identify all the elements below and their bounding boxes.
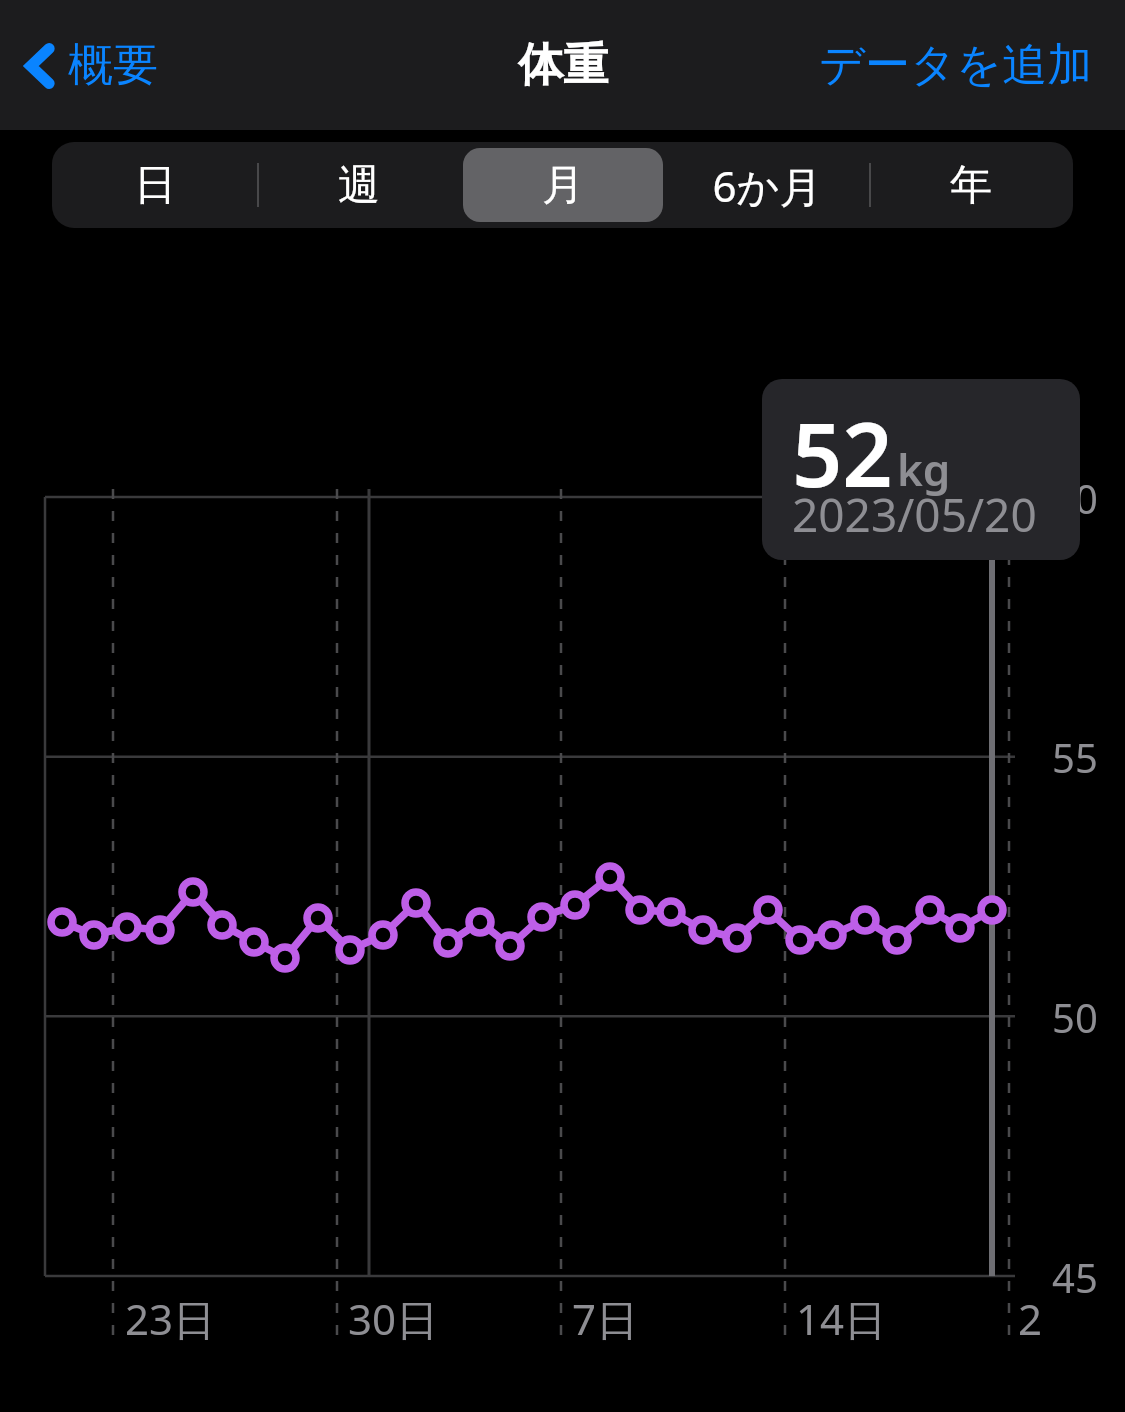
button[interactable]: データを追加	[813, 27, 1099, 104]
staticText: 6か月	[712, 157, 822, 214]
button[interactable]: 52	[762, 379, 1080, 560]
staticText: 日	[134, 159, 176, 212]
staticText: kg	[897, 439, 951, 499]
staticText: 30日	[348, 1290, 439, 1347]
staticText: 年	[950, 159, 992, 212]
button[interactable]: 6か月	[665, 142, 869, 228]
staticText: データを追加	[819, 37, 1093, 94]
button[interactable]: 月	[461, 142, 665, 228]
button[interactable]: 戻る	[18, 27, 164, 104]
button[interactable]: 年	[869, 142, 1073, 228]
other: 戻る	[24, 43, 58, 89]
staticText: 55	[1052, 730, 1098, 784]
staticText: 50	[1052, 990, 1098, 1044]
staticText: 14日	[796, 1290, 887, 1347]
staticText: 7日	[572, 1290, 639, 1347]
staticText: 2	[1018, 1290, 1043, 1347]
staticText: 52	[792, 393, 893, 513]
staticText: 概要	[68, 37, 158, 94]
staticText: 60	[1052, 471, 1098, 525]
button[interactable]: 日	[52, 142, 257, 228]
button[interactable]: 週	[257, 142, 461, 228]
staticText: 月	[542, 159, 584, 212]
staticText: 2023/05/20	[792, 483, 1037, 546]
staticText: 週	[338, 159, 380, 212]
staticText: 体重	[518, 37, 608, 94]
staticText: 45	[1052, 1250, 1098, 1304]
staticText: 23日	[125, 1290, 216, 1347]
